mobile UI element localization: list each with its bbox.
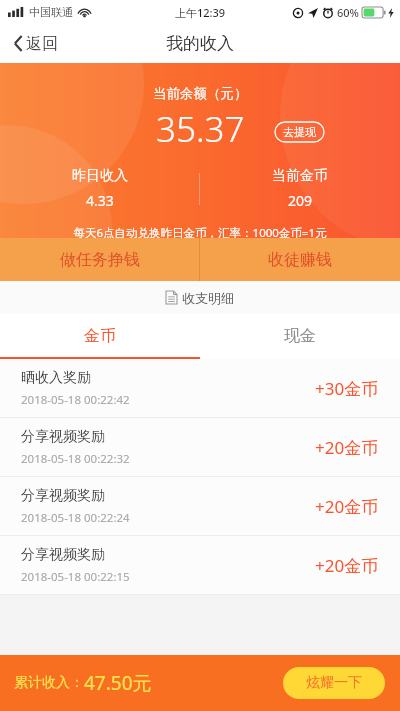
- staticText: +20金币: [315, 495, 379, 518]
- button[interactable]: 金币: [0, 314, 200, 357]
- button[interactable]: 分享视频奖励: [0, 477, 400, 536]
- staticText: +20金币: [315, 554, 379, 577]
- staticText: 分享视频奖励: [21, 428, 105, 446]
- staticText: 晒收入奖励: [21, 369, 91, 387]
- staticText: 每天6点自动兑换昨日金币，汇率：1000金币=1元: [73, 225, 327, 238]
- staticText: 当前金币: [272, 167, 328, 185]
- staticText: 47.50元: [84, 670, 152, 696]
- staticText: +30金币: [315, 377, 379, 400]
- staticText: 我的收入: [166, 33, 234, 54]
- button[interactable]: 收徒赚钱: [200, 238, 400, 281]
- staticText: 上午12:39: [175, 5, 226, 20]
- staticText: 去提现: [283, 125, 316, 139]
- button[interactable]: 去提现: [274, 121, 325, 143]
- staticText: 炫耀一下: [306, 674, 362, 692]
- staticText: 昨日收入: [72, 167, 128, 185]
- staticText: 金币: [84, 326, 116, 346]
- staticText: 60%: [337, 5, 359, 20]
- button[interactable]: 做任务挣钱: [0, 238, 199, 281]
- staticText: 做任务挣钱: [60, 250, 140, 270]
- staticText: 返回: [26, 34, 58, 54]
- staticText: 2018-05-18 00:22:24: [21, 510, 130, 526]
- button[interactable]: 炫耀一下: [283, 667, 385, 699]
- staticText: 4.33: [86, 191, 114, 210]
- staticText: 分享视频奖励: [21, 546, 105, 564]
- staticText: 中国联通: [29, 5, 73, 19]
- button[interactable]: 晒收入奖励: [0, 359, 400, 418]
- staticText: 209: [288, 191, 313, 210]
- staticText: +20金币: [315, 436, 379, 459]
- staticText: 2018-05-18 00:22:32: [21, 451, 130, 467]
- button[interactable]: 收支明细: [0, 281, 400, 314]
- staticText: 收徒赚钱: [268, 250, 332, 270]
- staticText: 累计收入：: [14, 674, 84, 692]
- staticText: 现金: [284, 326, 316, 346]
- staticText: 2018-05-18 00:22:15: [21, 569, 130, 585]
- staticText: 2018-05-18 00:22:42: [21, 392, 130, 408]
- button[interactable]: 分享视频奖励: [0, 418, 400, 477]
- staticText: 35.37: [156, 105, 245, 153]
- staticText: 分享视频奖励: [21, 487, 105, 505]
- button[interactable]: 现金: [200, 314, 400, 357]
- button[interactable]: 分享视频奖励: [0, 536, 400, 595]
- staticText: 当前余额（元）: [153, 85, 248, 102]
- staticText: 收支明细: [182, 290, 234, 306]
- button[interactable]: 返回: [0, 24, 72, 63]
